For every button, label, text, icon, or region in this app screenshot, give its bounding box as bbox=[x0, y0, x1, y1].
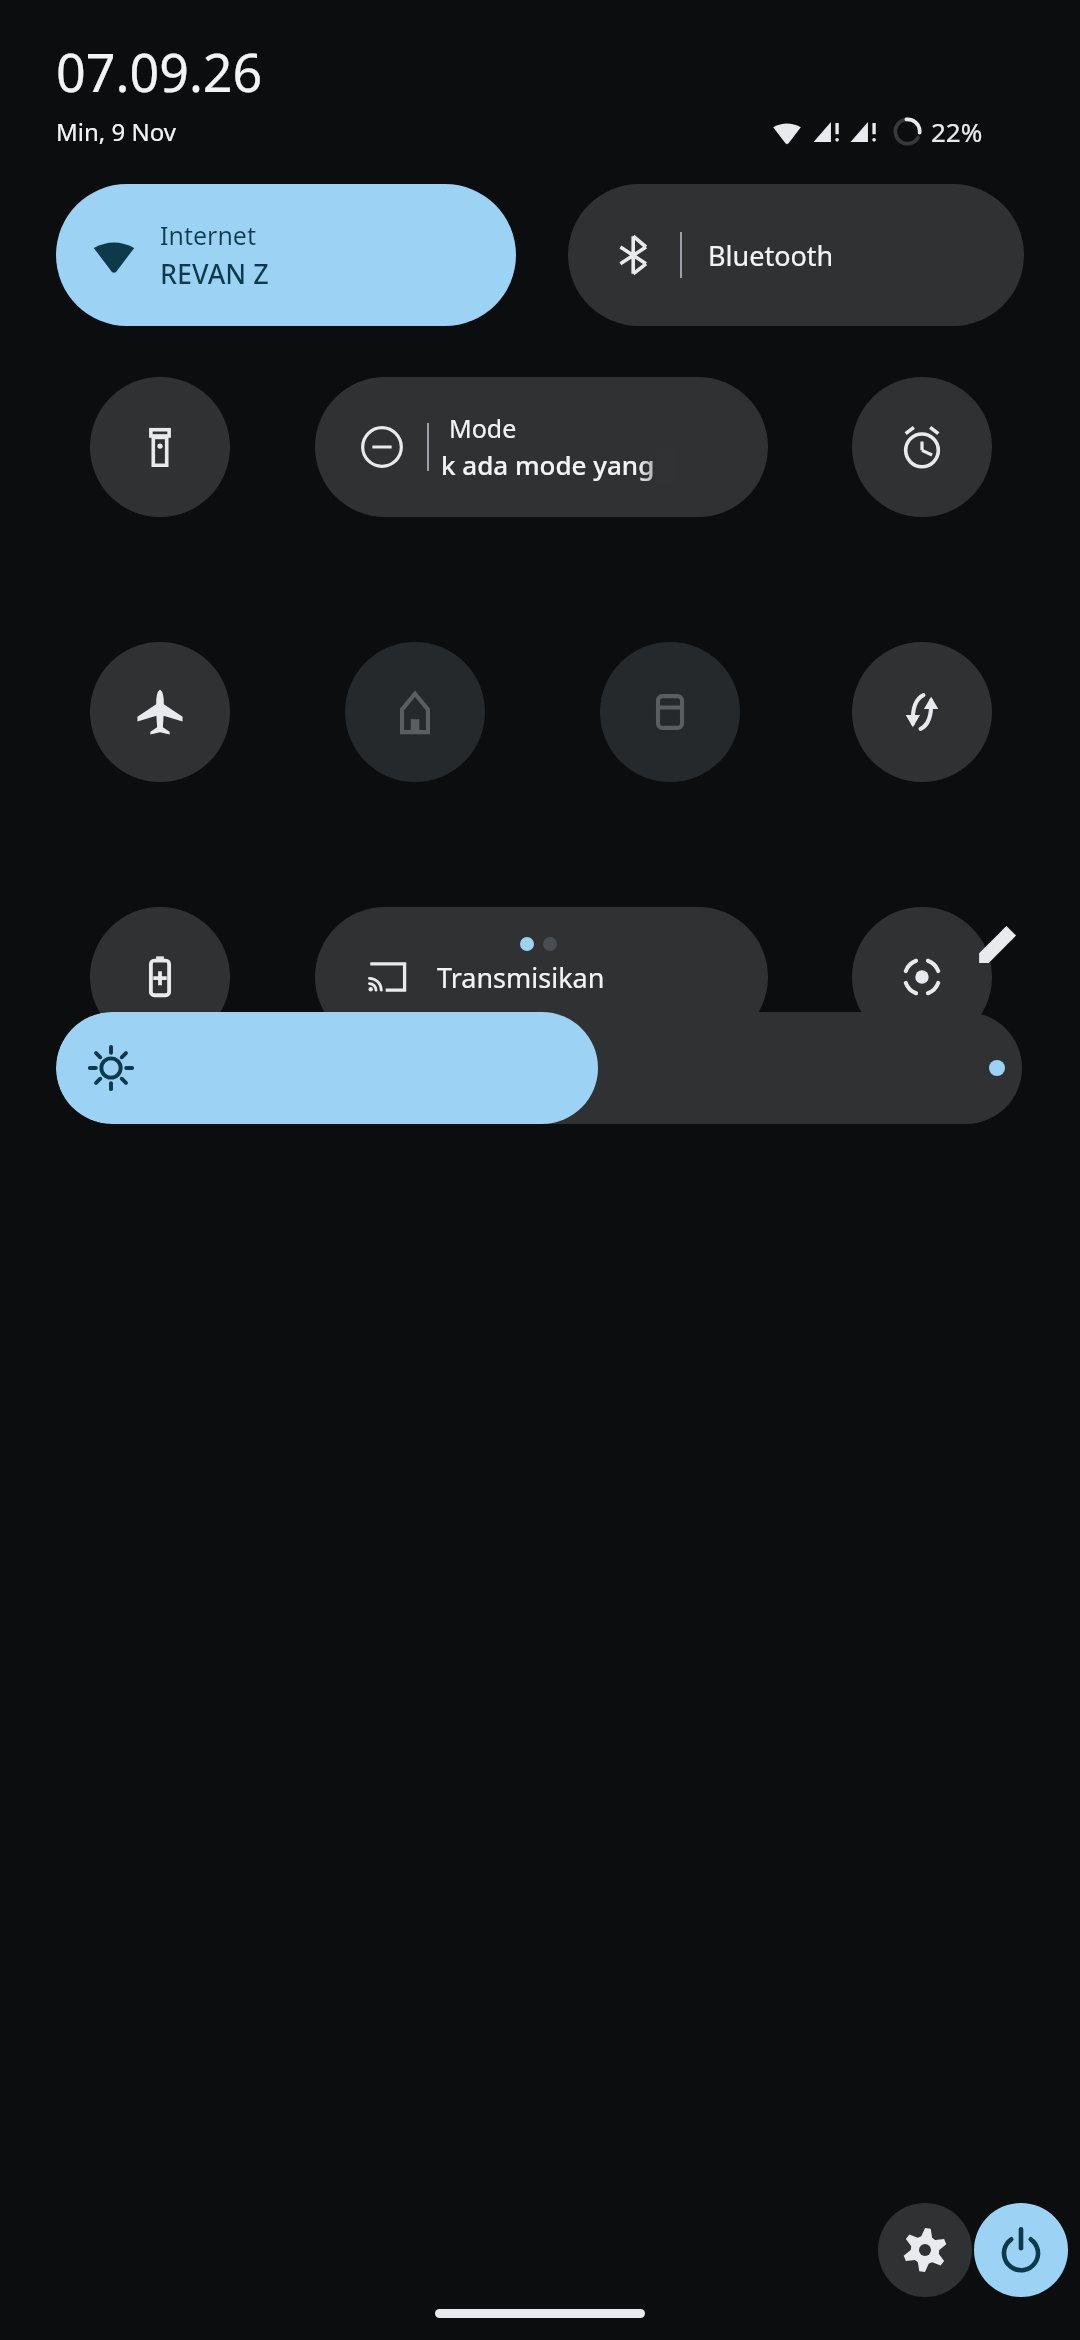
button[interactable]: Transmisikan bbox=[315, 907, 768, 1047]
staticText: k ada mode yang ak bbox=[441, 447, 677, 482]
button[interactable]: Alarm bbox=[852, 377, 992, 517]
button[interactable]: Internet bbox=[56, 184, 516, 326]
button[interactable]: Scan bbox=[852, 907, 992, 1047]
staticText: Min, 9 Nov bbox=[56, 115, 176, 148]
button[interactable]: Settings bbox=[878, 2203, 972, 2297]
button[interactable]: Airplane mode bbox=[90, 642, 230, 782]
button[interactable]: Edit tiles bbox=[958, 904, 1038, 984]
staticText: Bluetooth bbox=[708, 237, 834, 274]
button[interactable]: Power bbox=[974, 2203, 1068, 2297]
staticText: Mode bbox=[449, 411, 517, 445]
button[interactable]: Wallet bbox=[600, 642, 740, 782]
button[interactable]: Mode bbox=[315, 377, 768, 517]
button[interactable]: Battery saver bbox=[90, 907, 230, 1047]
button[interactable]: Flashlight bbox=[90, 377, 230, 517]
button[interactable]: Bluetooth bbox=[568, 184, 1024, 326]
button[interactable]: Home bbox=[345, 642, 485, 782]
button[interactable]: Auto rotate bbox=[852, 642, 992, 782]
staticText: REVAN Z bbox=[160, 255, 269, 292]
staticText: Internet bbox=[160, 218, 256, 252]
staticText: 22% bbox=[931, 114, 983, 149]
staticText: Transmisikan bbox=[437, 959, 605, 996]
button[interactable]: Brightness bbox=[56, 1012, 1022, 1124]
staticText: 07.09.26 bbox=[56, 36, 263, 107]
